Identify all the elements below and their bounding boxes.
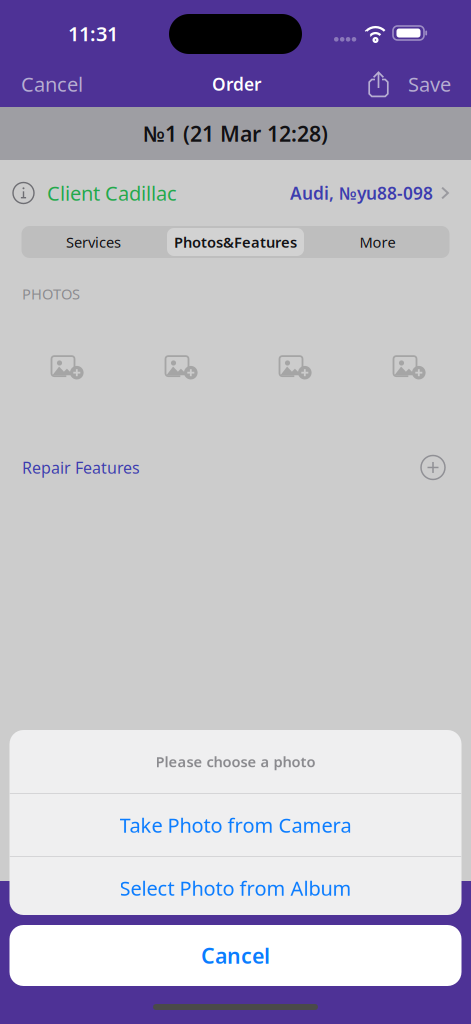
staticText: Select Photo from Album	[119, 875, 351, 901]
staticText: Cancel	[21, 71, 83, 97]
staticText: Services	[66, 232, 121, 252]
button[interactable]: Add photo	[235, 349, 349, 380]
staticText: Take Photo from Camera	[119, 812, 351, 838]
staticText: Photos&Features	[174, 232, 297, 252]
staticText: Audi, №yu88-098	[290, 181, 433, 204]
button[interactable]: Save	[406, 61, 471, 107]
staticText: Please choose a photo	[155, 752, 315, 771]
button[interactable]: Photos&Features	[165, 226, 305, 258]
staticText: Save	[408, 71, 451, 97]
staticText: №1 (21 Mar 12:28)	[143, 119, 328, 148]
button[interactable]: More	[305, 226, 449, 258]
button[interactable]: Add photo	[7, 349, 121, 380]
staticText: Cancel	[201, 941, 270, 970]
button[interactable]: Share	[363, 61, 406, 107]
staticText: Choose from Files	[152, 938, 319, 964]
button[interactable]: Cancel	[0, 61, 111, 107]
button[interactable]: Select Photo from Album	[9, 857, 461, 919]
button[interactable]: Add repair feature	[421, 455, 445, 479]
button[interactable]: Repair Features	[22, 457, 140, 478]
staticText: More	[359, 232, 395, 252]
button[interactable]: Client Cadillac	[0, 160, 471, 226]
button[interactable]: Take Photo from Camera	[9, 794, 461, 856]
staticText: Repair Features	[22, 457, 140, 478]
button[interactable]: Choose from Files	[9, 920, 461, 982]
staticText: Client Cadillac	[47, 180, 177, 206]
staticText: 11:31	[68, 20, 118, 47]
button[interactable]: Add photo	[121, 349, 235, 380]
staticText: Order	[212, 72, 262, 95]
button[interactable]: Cancel	[9, 925, 461, 986]
button[interactable]: Add photo	[349, 349, 463, 380]
button[interactable]: Services	[21, 226, 165, 258]
staticText: PHOTOS	[22, 284, 80, 303]
